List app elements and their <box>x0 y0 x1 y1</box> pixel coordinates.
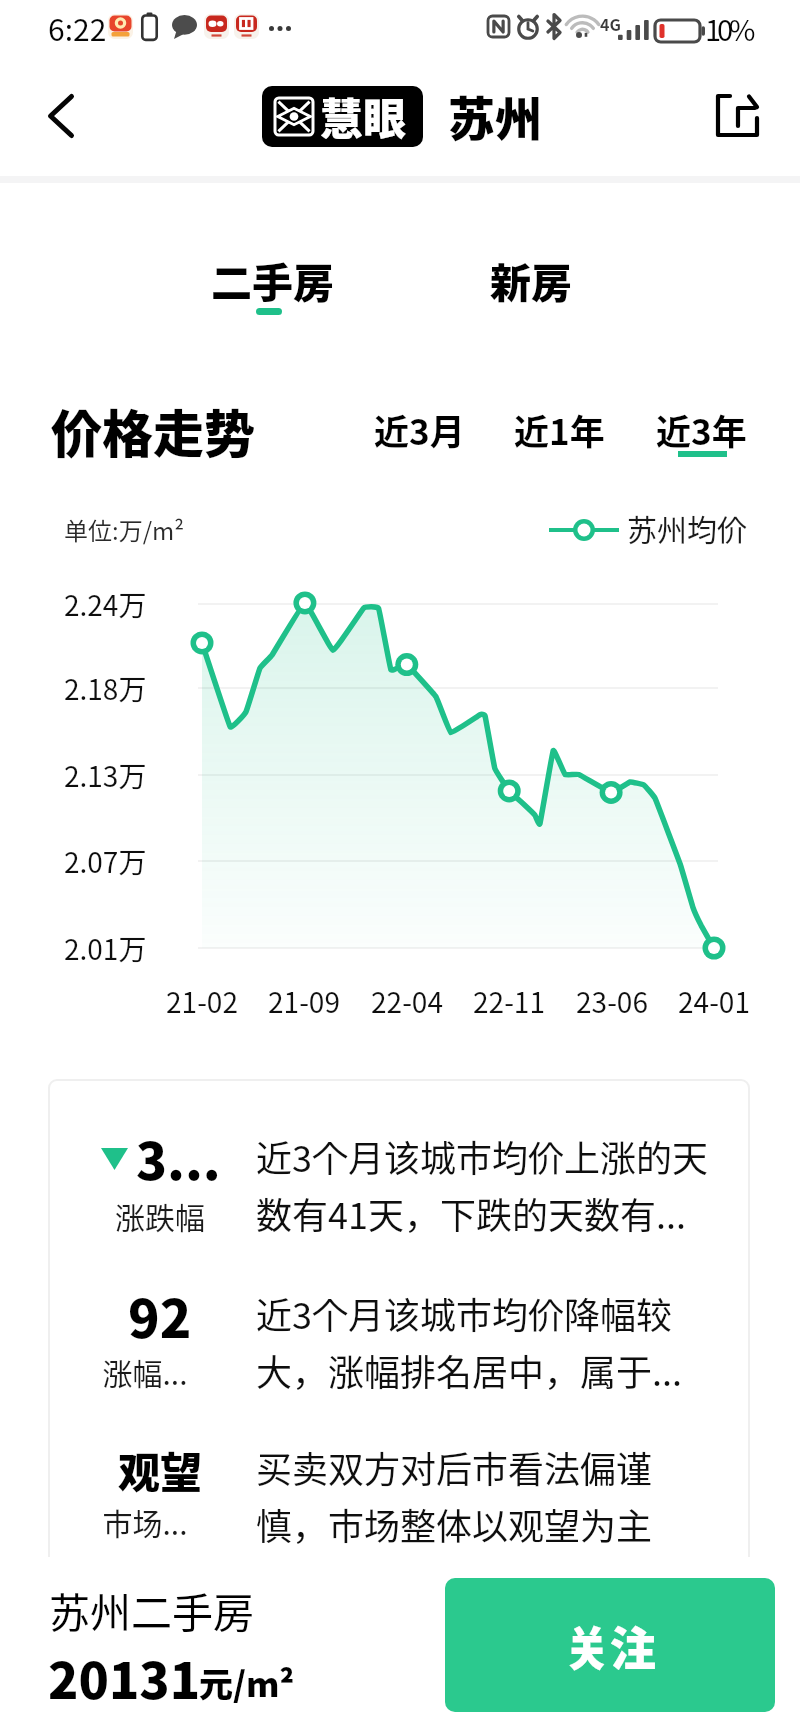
staticText: 苏州均价 <box>627 506 747 549</box>
staticText: 单位:万/m² <box>64 512 185 547</box>
button[interactable]: 近1年 <box>500 394 616 450</box>
button[interactable]: 3... <box>49 1141 749 1277</box>
staticText: 近3个月该城市均价上涨的天 数有41天，下跌的天数有... <box>256 1130 726 1239</box>
staticText: 23-06 <box>562 981 662 1022</box>
staticText: 慧眼 <box>320 86 406 146</box>
staticText: 涨跌幅 <box>60 1194 260 1237</box>
button[interactable]: 观望 <box>49 1452 749 1588</box>
button[interactable]: 92 <box>49 1298 749 1434</box>
staticText: 22-04 <box>357 981 457 1022</box>
staticText: 近1年 <box>514 404 605 455</box>
button[interactable]: 关注 <box>445 1578 775 1712</box>
staticText: 20131 <box>48 1641 201 1713</box>
staticText: 2.07万 <box>64 841 147 882</box>
staticText: 市场... <box>45 1500 245 1543</box>
staticText: 二手房 <box>211 250 334 309</box>
staticText: 22-11 <box>459 981 559 1022</box>
staticText: 4G <box>600 12 621 35</box>
button[interactable]: Back <box>26 86 86 146</box>
staticText: 92 <box>128 1278 192 1353</box>
staticText: 关注 <box>564 1612 656 1679</box>
staticText: 近3年 <box>656 404 747 455</box>
staticText: 近3月 <box>374 404 465 455</box>
staticText: 2.01万 <box>64 928 147 969</box>
staticText: 近3个月该城市均价降幅较 大，涨幅排名居中，属于... <box>256 1287 726 1396</box>
staticText: 24-01 <box>664 981 764 1022</box>
staticText: 21-09 <box>254 981 354 1022</box>
staticText: 2.18万 <box>64 668 147 709</box>
staticText: 2.13万 <box>64 755 147 796</box>
staticText: 涨幅... <box>45 1350 245 1393</box>
staticText: 价格走势 <box>51 394 256 468</box>
button[interactable]: 慧眼 <box>262 86 423 147</box>
staticText: 3... <box>136 1121 221 1195</box>
staticText: 10% <box>705 7 752 49</box>
staticText: 买卖双方对后市看法偏谨 慎，市场整体以观望为主 <box>256 1441 726 1550</box>
button[interactable]: 近3年 <box>642 394 758 464</box>
button[interactable]: 新房 <box>470 240 590 322</box>
staticText: 苏州 <box>448 81 542 149</box>
button[interactable]: Share <box>706 84 768 146</box>
staticText: 2.24万 <box>64 584 147 625</box>
staticText: 观望 <box>118 1439 203 1500</box>
staticText: 21-02 <box>152 981 252 1022</box>
button[interactable]: 二手房 <box>190 240 352 322</box>
staticText: 新房 <box>490 250 572 309</box>
staticText: 元/m² <box>199 1658 295 1707</box>
staticText: 苏州二手房 <box>49 1580 254 1639</box>
button[interactable]: 近3月 <box>360 394 476 450</box>
staticText: 6:22 <box>48 6 107 49</box>
